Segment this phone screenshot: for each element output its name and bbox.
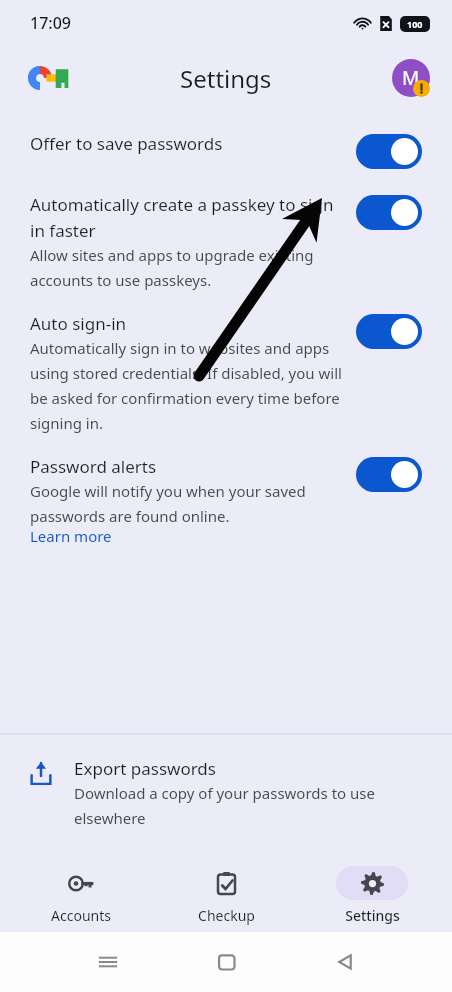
staticText: Auto sign-in <box>30 312 127 335</box>
button[interactable]: Accounts <box>16 852 146 925</box>
staticText: Google will notify you when your saved p… <box>30 481 342 526</box>
staticText: Password alerts <box>30 455 157 478</box>
button[interactable]: Toggle on <box>356 134 422 169</box>
staticText: Download a copy of your passwords to use… <box>74 783 428 828</box>
button[interactable]: Checkup <box>161 852 291 925</box>
staticText: Accounts <box>51 906 111 925</box>
button[interactable]: Account <box>392 59 430 97</box>
staticText: M <box>402 65 420 91</box>
staticText: Export passwords <box>74 757 216 780</box>
button[interactable]: Auto sign-in <box>0 312 452 433</box>
staticText: Checkup <box>198 906 255 925</box>
staticText: Allow sites and apps to upgrade existing… <box>30 245 342 290</box>
button[interactable]: Home <box>216 951 238 973</box>
button[interactable]: Recents <box>96 950 120 974</box>
button[interactable]: Offer to save passwords <box>0 132 452 169</box>
button[interactable]: Learn more <box>30 526 112 546</box>
staticText: 17:09 <box>30 12 71 34</box>
button[interactable]: Toggle on <box>356 195 422 230</box>
button[interactable]: Automatically create a passkey to sign i… <box>0 193 452 290</box>
staticText: 100 <box>407 18 423 30</box>
staticText: Automatically create a passkey to sign i… <box>30 193 342 242</box>
staticText: Settings <box>180 62 272 95</box>
staticText: Automatically sign in to websites and ap… <box>30 338 342 433</box>
button[interactable]: Password alerts <box>0 455 452 546</box>
button[interactable]: Back <box>334 951 356 973</box>
button[interactable]: Export passwords <box>0 735 452 842</box>
button[interactable]: Settings <box>307 852 437 925</box>
staticText: Offer to save passwords <box>30 132 223 155</box>
button[interactable]: Toggle on <box>356 457 422 492</box>
staticText: Settings <box>345 906 400 925</box>
button[interactable]: Toggle on <box>356 314 422 349</box>
